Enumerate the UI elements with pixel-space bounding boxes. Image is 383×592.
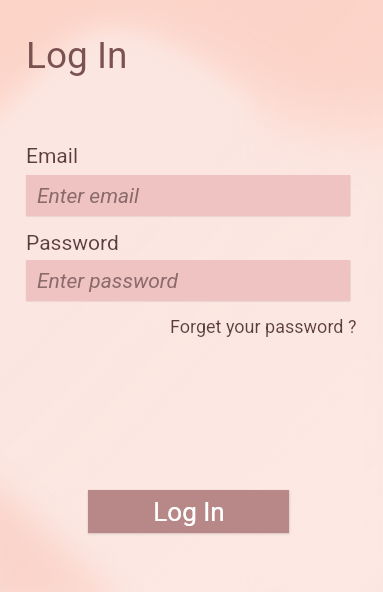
staticText: Enter email <box>37 184 139 209</box>
button[interactable]: Log In <box>88 490 289 533</box>
button[interactable]: Password input field <box>26 260 350 301</box>
staticText: Log In <box>153 497 225 527</box>
staticText: Log In <box>26 34 128 77</box>
staticText: Enter password <box>37 269 179 294</box>
staticText: Password <box>26 231 119 256</box>
button[interactable]: Email input field <box>26 175 350 216</box>
staticText: Email <box>26 144 78 169</box>
staticText: Forget your password ? <box>170 316 357 337</box>
button[interactable]: Forget your password ? <box>170 316 357 337</box>
